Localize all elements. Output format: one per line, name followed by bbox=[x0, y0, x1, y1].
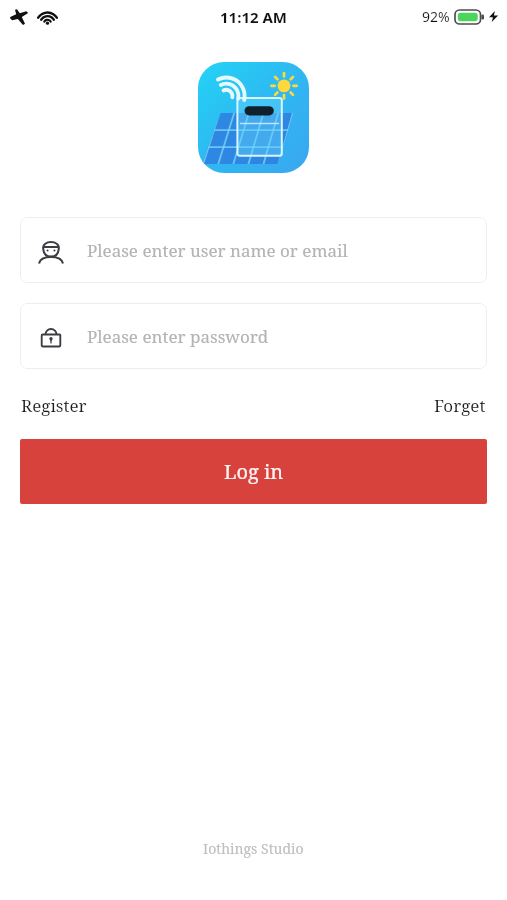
button[interactable]: Forget bbox=[433, 390, 487, 421]
button[interactable]: Register bbox=[20, 390, 88, 421]
staticText: Please enter user name or email bbox=[87, 239, 348, 262]
staticText: Forget bbox=[434, 394, 486, 417]
staticText: Please enter password bbox=[87, 325, 269, 348]
button[interactable]: Log in bbox=[20, 439, 487, 504]
button[interactable]: Password bbox=[20, 303, 487, 369]
staticText: Register bbox=[21, 394, 87, 417]
staticText: Log in bbox=[224, 458, 284, 485]
staticText: 92% bbox=[422, 7, 450, 26]
staticText: Iothings Studio bbox=[203, 839, 304, 858]
button[interactable]: User name or email bbox=[20, 217, 487, 283]
staticText: 11:12 AM bbox=[220, 7, 287, 27]
